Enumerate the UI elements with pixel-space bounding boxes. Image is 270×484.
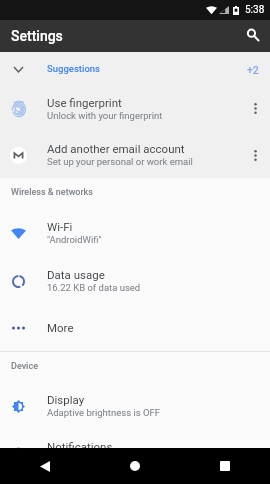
button[interactable]: More options — [240, 132, 270, 178]
staticText: Device — [11, 361, 38, 372]
button[interactable]: Display — [0, 383, 270, 429]
button[interactable]: Suggestions — [0, 52, 270, 85]
staticText: Settings — [11, 28, 63, 44]
staticText: +2 — [247, 64, 259, 76]
staticText: "AndroidWifi" — [47, 234, 102, 245]
button[interactable]: Back — [0, 448, 90, 484]
staticText: Adaptive brightness is OFF — [47, 407, 161, 418]
staticText: Wireless & networks — [11, 187, 93, 198]
button[interactable]: Search — [240, 23, 266, 49]
staticText: 16.22 KB of data used — [47, 282, 141, 293]
button[interactable]: Add another email account — [0, 132, 270, 178]
staticText: Set up your personal or work email — [47, 156, 193, 167]
button[interactable]: Use fingerprint — [0, 85, 270, 132]
staticText: Unlock with your fingerprint — [47, 110, 163, 121]
button[interactable]: Wi-Fi — [0, 209, 270, 257]
button[interactable]: More — [0, 305, 270, 351]
button[interactable]: Home — [90, 448, 180, 484]
button[interactable]: More options — [240, 85, 270, 132]
staticText: Notifications — [47, 440, 113, 448]
button[interactable]: Recent apps — [180, 448, 270, 484]
button[interactable]: Data usage — [0, 257, 270, 305]
staticText: Use fingerprint — [47, 96, 122, 109]
staticText: Data usage — [47, 268, 105, 281]
staticText: Wi-Fi — [47, 220, 73, 233]
staticText: Add another email account — [47, 142, 185, 155]
button[interactable]: Notifications — [0, 429, 270, 448]
staticText: More — [47, 321, 74, 334]
staticText: 5:38 — [245, 4, 265, 16]
staticText: Suggestions — [47, 63, 100, 74]
staticText: Display — [47, 393, 85, 406]
